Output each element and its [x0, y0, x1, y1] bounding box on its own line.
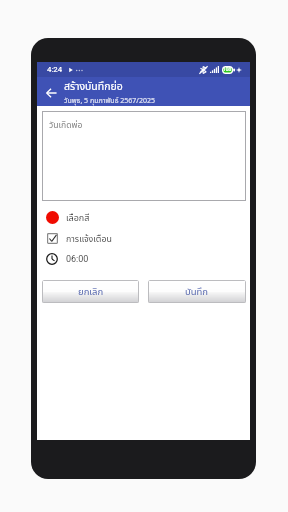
staticText: สร้างบันทึกย่อ [64, 79, 123, 95]
staticText: 108 [223, 67, 232, 73]
button[interactable]: ยกเลิก [42, 280, 139, 303]
staticText: เลือกสี [66, 211, 90, 224]
staticText: การแจ้งเตือน [66, 233, 112, 244]
button[interactable]: วันเกิดพ่อ [42, 111, 246, 201]
staticText: 4:24 [47, 65, 63, 74]
staticText: 06:00 [66, 254, 89, 265]
button[interactable]: เลือกสี [37, 211, 250, 224]
button[interactable]: การแจ้งเตือน [37, 233, 250, 244]
staticText: วันพุธ, 5 กุมภาพันธ์ 2567/2025 [64, 96, 155, 107]
button[interactable]: 06:00 [37, 253, 250, 265]
staticText: ยกเลิก [78, 285, 104, 299]
staticText: วันเกิดพ่อ [49, 119, 83, 132]
button[interactable]: Back [44, 77, 59, 106]
button[interactable]: บันทึก [148, 280, 246, 303]
staticText: บันทึก [185, 285, 209, 299]
